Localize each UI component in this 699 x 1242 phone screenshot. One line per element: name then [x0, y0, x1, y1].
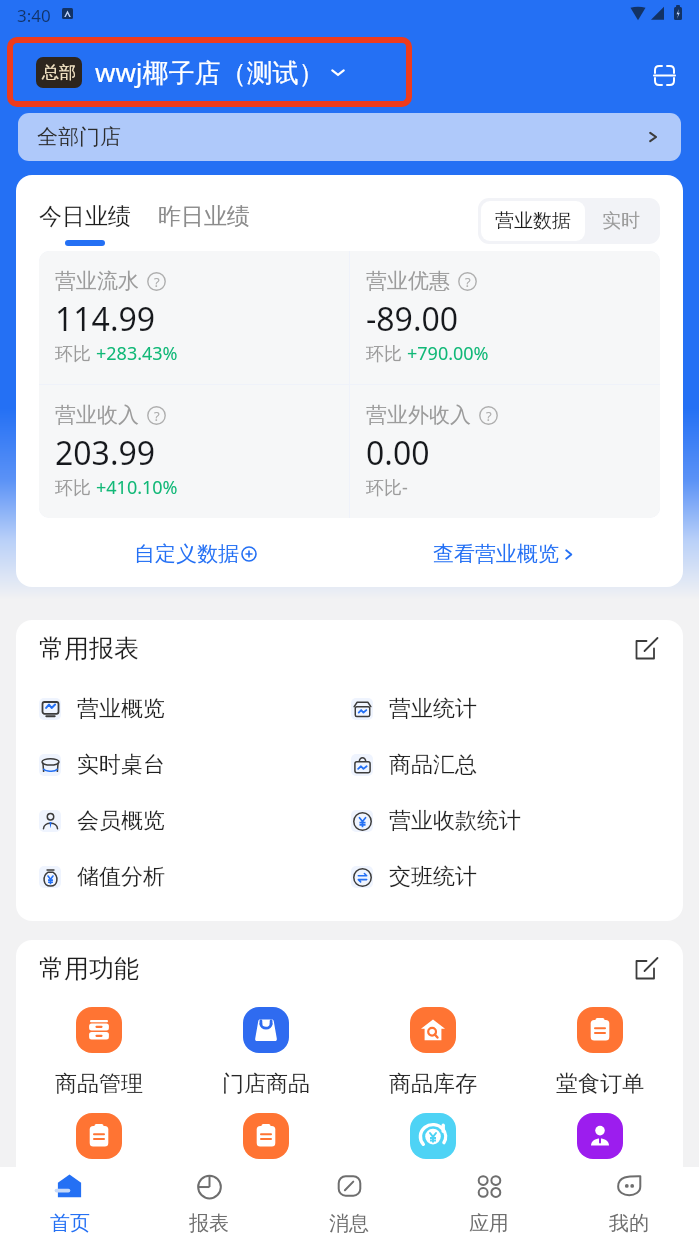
staticText: 203.99 [55, 431, 156, 475]
button[interactable]: 昨日业绩 [158, 202, 250, 231]
button[interactable] [16, 1113, 182, 1159]
staticText: 环比 [366, 341, 407, 366]
button[interactable]: 报表 [139, 1173, 279, 1236]
button[interactable]: 商品汇总 [351, 751, 663, 779]
button[interactable]: 营业数据 [481, 201, 585, 241]
button[interactable]: 商品管理 [16, 1007, 182, 1098]
staticText: 报表 [189, 1211, 229, 1236]
staticText: ? [465, 273, 471, 291]
staticText: 商品汇总 [389, 751, 477, 779]
staticText: wwj椰子店（测试） [95, 54, 325, 90]
button[interactable] [349, 1113, 516, 1159]
staticText: 环比- [366, 475, 408, 500]
button[interactable]: 营业统计 [351, 695, 663, 723]
staticText: 0.00 [366, 431, 430, 475]
staticText: 消息 [329, 1211, 369, 1236]
staticText: 常用报表 [39, 633, 139, 664]
staticText: ? [154, 273, 160, 291]
staticText: 昨日业绩 [158, 202, 250, 231]
button[interactable]: 储值分析 [39, 863, 351, 891]
staticText: 3:40 [17, 4, 51, 27]
button[interactable]: 堂食订单 [516, 1007, 683, 1098]
button[interactable]: 营业概览 [39, 695, 351, 723]
button[interactable]: 实时桌台 [39, 751, 351, 779]
staticText: +790.00% [407, 341, 489, 366]
button[interactable]: 商品库存 [349, 1007, 516, 1098]
button[interactable] [182, 1113, 349, 1159]
button[interactable]: 门店商品 [182, 1007, 349, 1098]
staticText: +283.43% [96, 341, 178, 366]
button[interactable]: 查看营业概览 [427, 535, 581, 573]
button[interactable]: 今日业绩 [39, 202, 131, 246]
button[interactable]: 消息 [279, 1173, 419, 1236]
staticText: 应用 [469, 1211, 509, 1236]
button[interactable]: 应用 [419, 1173, 559, 1236]
staticText: 自定义数据 [134, 541, 239, 567]
staticText: 常用功能 [39, 953, 139, 984]
button[interactable]: 全部门店 [18, 113, 681, 161]
staticText: 营业外收入 [366, 402, 471, 428]
staticText: 营业数据 [495, 209, 571, 233]
button[interactable]: 实时 [585, 201, 657, 241]
staticText: 我的 [609, 1211, 649, 1236]
staticText: 商品管理 [55, 1070, 143, 1098]
button[interactable]: 总部 [36, 54, 349, 90]
staticText: 总部 [42, 62, 76, 83]
staticText: 今日业绩 [39, 202, 131, 231]
staticText: 交班统计 [389, 863, 477, 891]
button[interactable]: 营业收款统计 [351, 807, 663, 835]
staticText: 营业收入 [55, 402, 139, 428]
staticText: 实时桌台 [77, 751, 165, 779]
staticText: 全部门店 [37, 124, 121, 150]
staticText: ? [154, 407, 160, 425]
staticText: 门店商品 [222, 1070, 310, 1098]
staticText: 查看营业概览 [433, 541, 559, 567]
staticText: 营业优惠 [366, 268, 450, 294]
staticText: 营业流水 [55, 268, 139, 294]
staticText: 环比 [55, 475, 96, 500]
staticText: ? [486, 407, 492, 425]
staticText: +410.10% [96, 475, 178, 500]
staticText: 114.99 [55, 297, 156, 341]
button[interactable]: 我的 [559, 1173, 699, 1236]
staticText: 实时 [602, 209, 640, 233]
button[interactable]: 自定义数据 [128, 535, 263, 573]
staticText: 首页 [50, 1211, 90, 1236]
button[interactable]: 交班统计 [351, 863, 663, 891]
staticText: 商品库存 [389, 1070, 477, 1098]
staticText: 储值分析 [77, 863, 165, 891]
staticText: -89.00 [366, 297, 459, 341]
staticText: 会员概览 [77, 807, 165, 835]
staticText: 营业概览 [77, 695, 165, 723]
button[interactable]: Scan QR code [643, 54, 685, 96]
staticText: 营业收款统计 [389, 807, 521, 835]
staticText: 环比 [55, 341, 96, 366]
staticText: 营业统计 [389, 695, 477, 723]
button[interactable]: 首页 [0, 1173, 139, 1236]
button[interactable]: Edit 常用功能 [629, 951, 663, 985]
button[interactable]: 会员概览 [39, 807, 351, 835]
staticText: 堂食订单 [556, 1070, 644, 1098]
button[interactable]: Edit 常用报表 [629, 631, 663, 665]
button[interactable] [516, 1113, 683, 1159]
